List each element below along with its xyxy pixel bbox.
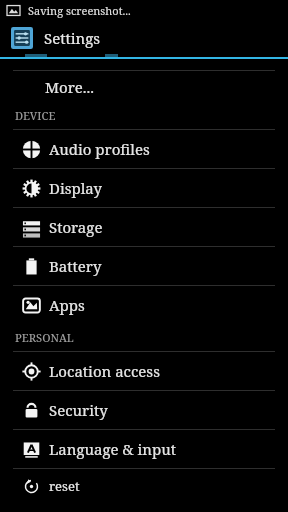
- staticText: Apps: [49, 295, 85, 315]
- button[interactable]: Battery: [0, 247, 288, 285]
- button[interactable]: Location access: [0, 352, 288, 390]
- button[interactable]: Storage: [0, 208, 288, 246]
- staticText: reset: [49, 477, 80, 495]
- staticText: Display: [49, 178, 102, 198]
- button[interactable]: Saving screenshot...: [0, 0, 288, 21]
- button[interactable]: reset: [0, 469, 288, 503]
- staticText: DEVICE: [15, 108, 56, 123]
- staticText: More...: [45, 77, 95, 97]
- button[interactable]: Apps: [0, 286, 288, 324]
- staticText: Battery: [49, 256, 102, 276]
- button[interactable]: Display: [0, 169, 288, 207]
- button[interactable]: Security: [0, 391, 288, 429]
- staticText: Storage: [49, 217, 103, 237]
- staticText: Settings: [44, 28, 101, 48]
- button[interactable]: Settings: [0, 21, 288, 54]
- button[interactable]: Audio profiles: [0, 130, 288, 168]
- staticText: Security: [49, 400, 108, 420]
- staticText: Saving screenshot...: [28, 3, 131, 18]
- staticText: PERSONAL: [15, 330, 74, 345]
- staticText: Location access: [49, 361, 160, 381]
- button[interactable]: More...: [0, 71, 288, 102]
- staticText: Language & input: [49, 439, 177, 459]
- staticText: Audio profiles: [49, 139, 150, 159]
- button[interactable]: Language & input: [0, 430, 288, 468]
